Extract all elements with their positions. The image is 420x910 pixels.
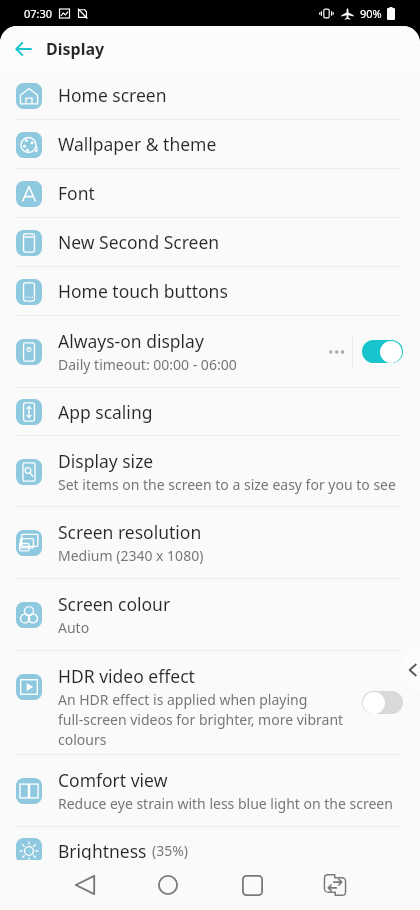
staticText: Medium (2340 x 1080) [58,546,204,565]
button[interactable]: Brightness [0,827,420,874]
button[interactable]: Screen colour [0,579,420,650]
button[interactable]: Turn on [362,691,403,714]
button[interactable]: Edge panel [400,648,420,692]
button[interactable]: Screen resolution [0,507,420,578]
staticText: Brightness [58,839,147,863]
staticText: Display size [58,449,154,473]
staticText: 90% [360,6,382,21]
button[interactable]: Recent apps [227,860,277,910]
staticText: Daily timeout: 00:00 - 06:00 [58,355,237,374]
staticText: App scaling [58,400,153,424]
staticText: Home screen [58,83,167,107]
staticText: Screen colour [58,592,171,616]
staticText: HDR video effect [58,664,195,688]
staticText: Auto [58,618,90,637]
staticText: Always-on display [58,329,204,353]
staticText: (35%) [152,841,189,860]
staticText: Home touch buttons [58,279,228,303]
button[interactable]: Display size [0,436,420,506]
button[interactable]: Home touch buttons [0,267,420,315]
staticText: Reduce eye strain with less blue light o… [58,794,393,813]
button[interactable]: More options [320,316,352,387]
button[interactable]: Turn off [362,340,403,363]
staticText: New Second Screen [58,230,220,254]
button[interactable]: Font [0,169,420,217]
staticText: Font [58,181,95,205]
staticText: Wallpaper & theme [58,132,217,156]
staticText: Screen resolution [58,520,202,544]
staticText: Comfort view [58,768,168,792]
staticText: 07:30 [24,6,53,21]
staticText: An HDR effect is applied when playing fu… [58,690,348,749]
button[interactable]: Back [60,860,110,910]
button[interactable]: Home [143,860,193,910]
button[interactable]: HDR video effect [0,651,420,754]
staticText: Display [46,38,105,60]
button[interactable]: Multi window [310,860,360,910]
button[interactable]: Comfort view [0,755,420,826]
button[interactable]: Always-on display [0,316,420,387]
button[interactable]: App scaling [0,388,420,435]
staticText: Set items on the screen to a size easy f… [58,475,396,494]
button[interactable]: Home screen [0,71,420,119]
button[interactable]: Wallpaper & theme [0,120,420,168]
button[interactable]: New Second Screen [0,218,420,266]
button[interactable]: Back [0,26,46,71]
